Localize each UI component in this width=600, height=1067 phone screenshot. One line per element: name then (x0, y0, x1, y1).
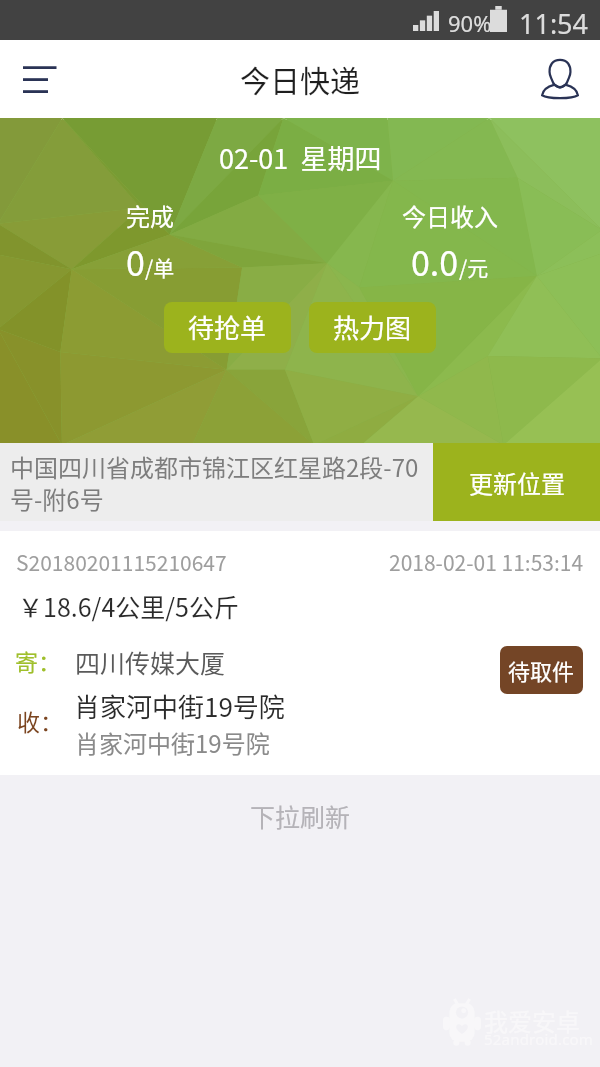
staticText: 02-01 星期四 (219, 138, 382, 177)
staticText: 待抢单 (188, 308, 267, 346)
staticText: /元 (459, 252, 489, 282)
staticText: 完成 (126, 198, 174, 233)
staticText: 11:54 (519, 5, 589, 42)
staticText: /单 (145, 252, 175, 282)
staticText: 0.0 (411, 237, 459, 286)
staticText: 四川传媒大厦 (75, 644, 226, 680)
staticText: 下拉刷新 (250, 798, 351, 834)
staticText: 肖家河中街19号院 (75, 725, 270, 760)
button[interactable]: Profile (530, 50, 590, 110)
button[interactable]: 热力图 (309, 302, 436, 353)
staticText: S20180201115210647 (16, 547, 227, 577)
staticText: 2018-02-01 11:53:14 (389, 547, 584, 577)
staticText: 寄： (15, 644, 61, 677)
staticText: 号-附6号 (10, 481, 104, 516)
button[interactable]: 更新位置 (433, 443, 600, 521)
staticText: 更新位置 (469, 465, 565, 500)
staticText: 0 (126, 237, 145, 286)
staticText: ￥18.6/4公里/5公斤 (18, 588, 239, 624)
staticText: 收： (17, 704, 63, 737)
button[interactable]: 待取件 (500, 646, 583, 694)
button[interactable]: S20180201115210647 (0, 531, 600, 775)
button[interactable]: 中国四川省成都市锦江区红星路2段-70 (0, 443, 433, 521)
staticText: 今日收入 (402, 198, 498, 233)
staticText: 肖家河中街19号院 (74, 687, 285, 725)
staticText: 待取件 (508, 654, 575, 686)
button[interactable]: 待抢单 (164, 302, 291, 353)
staticText: 90% (448, 8, 492, 38)
staticText: 中国四川省成都市锦江区红星路2段-70 (10, 449, 419, 484)
staticText: 热力图 (333, 308, 412, 346)
staticText: 今日快递 (240, 57, 360, 100)
button[interactable]: Open navigation menu (6, 50, 68, 110)
